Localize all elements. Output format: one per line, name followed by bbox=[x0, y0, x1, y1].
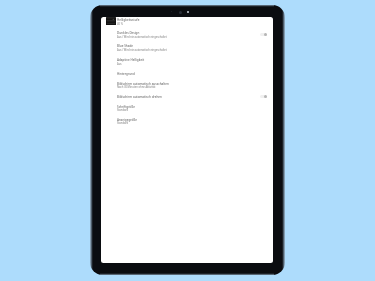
staticText: Dunkles Design bbox=[117, 31, 140, 35]
button[interactable]: Ein/Aus bbox=[257, 93, 269, 99]
staticText: Standard bbox=[117, 108, 129, 112]
staticText: 40 % bbox=[117, 22, 123, 26]
button[interactable] bbox=[101, 79, 273, 92]
staticText: Aus / Wird nie automatisch eingeschaltet bbox=[117, 48, 167, 52]
button[interactable]: Ein/Aus bbox=[257, 31, 269, 37]
staticText: Schriftgröße bbox=[117, 105, 135, 109]
button[interactable] bbox=[101, 55, 273, 68]
staticText: Aus / Wird nie automatisch eingeschaltet bbox=[117, 35, 167, 39]
staticText: Nach 30 Minuten ohne Aktivität bbox=[117, 85, 156, 89]
button[interactable] bbox=[101, 92, 273, 101]
button[interactable] bbox=[101, 42, 273, 55]
staticText: Adaptive Helligkeit bbox=[117, 58, 145, 62]
staticText: Bildschirm automatisch ausschalten bbox=[117, 82, 169, 86]
button[interactable]: Helligkeit bbox=[106, 17, 116, 25]
staticText: Bildschirm automatisch drehen bbox=[117, 95, 162, 99]
staticText: Hintergrund bbox=[117, 72, 135, 76]
button[interactable] bbox=[101, 69, 273, 78]
staticText: Blue Shade bbox=[117, 44, 133, 48]
staticText: Anzeigegröße bbox=[117, 118, 137, 122]
staticText: Standard bbox=[117, 121, 129, 125]
button[interactable] bbox=[101, 102, 273, 115]
staticText: Aus bbox=[117, 62, 122, 66]
staticText: Helligkeitsstufe bbox=[117, 18, 140, 22]
button[interactable] bbox=[101, 28, 273, 41]
button[interactable] bbox=[101, 115, 273, 128]
